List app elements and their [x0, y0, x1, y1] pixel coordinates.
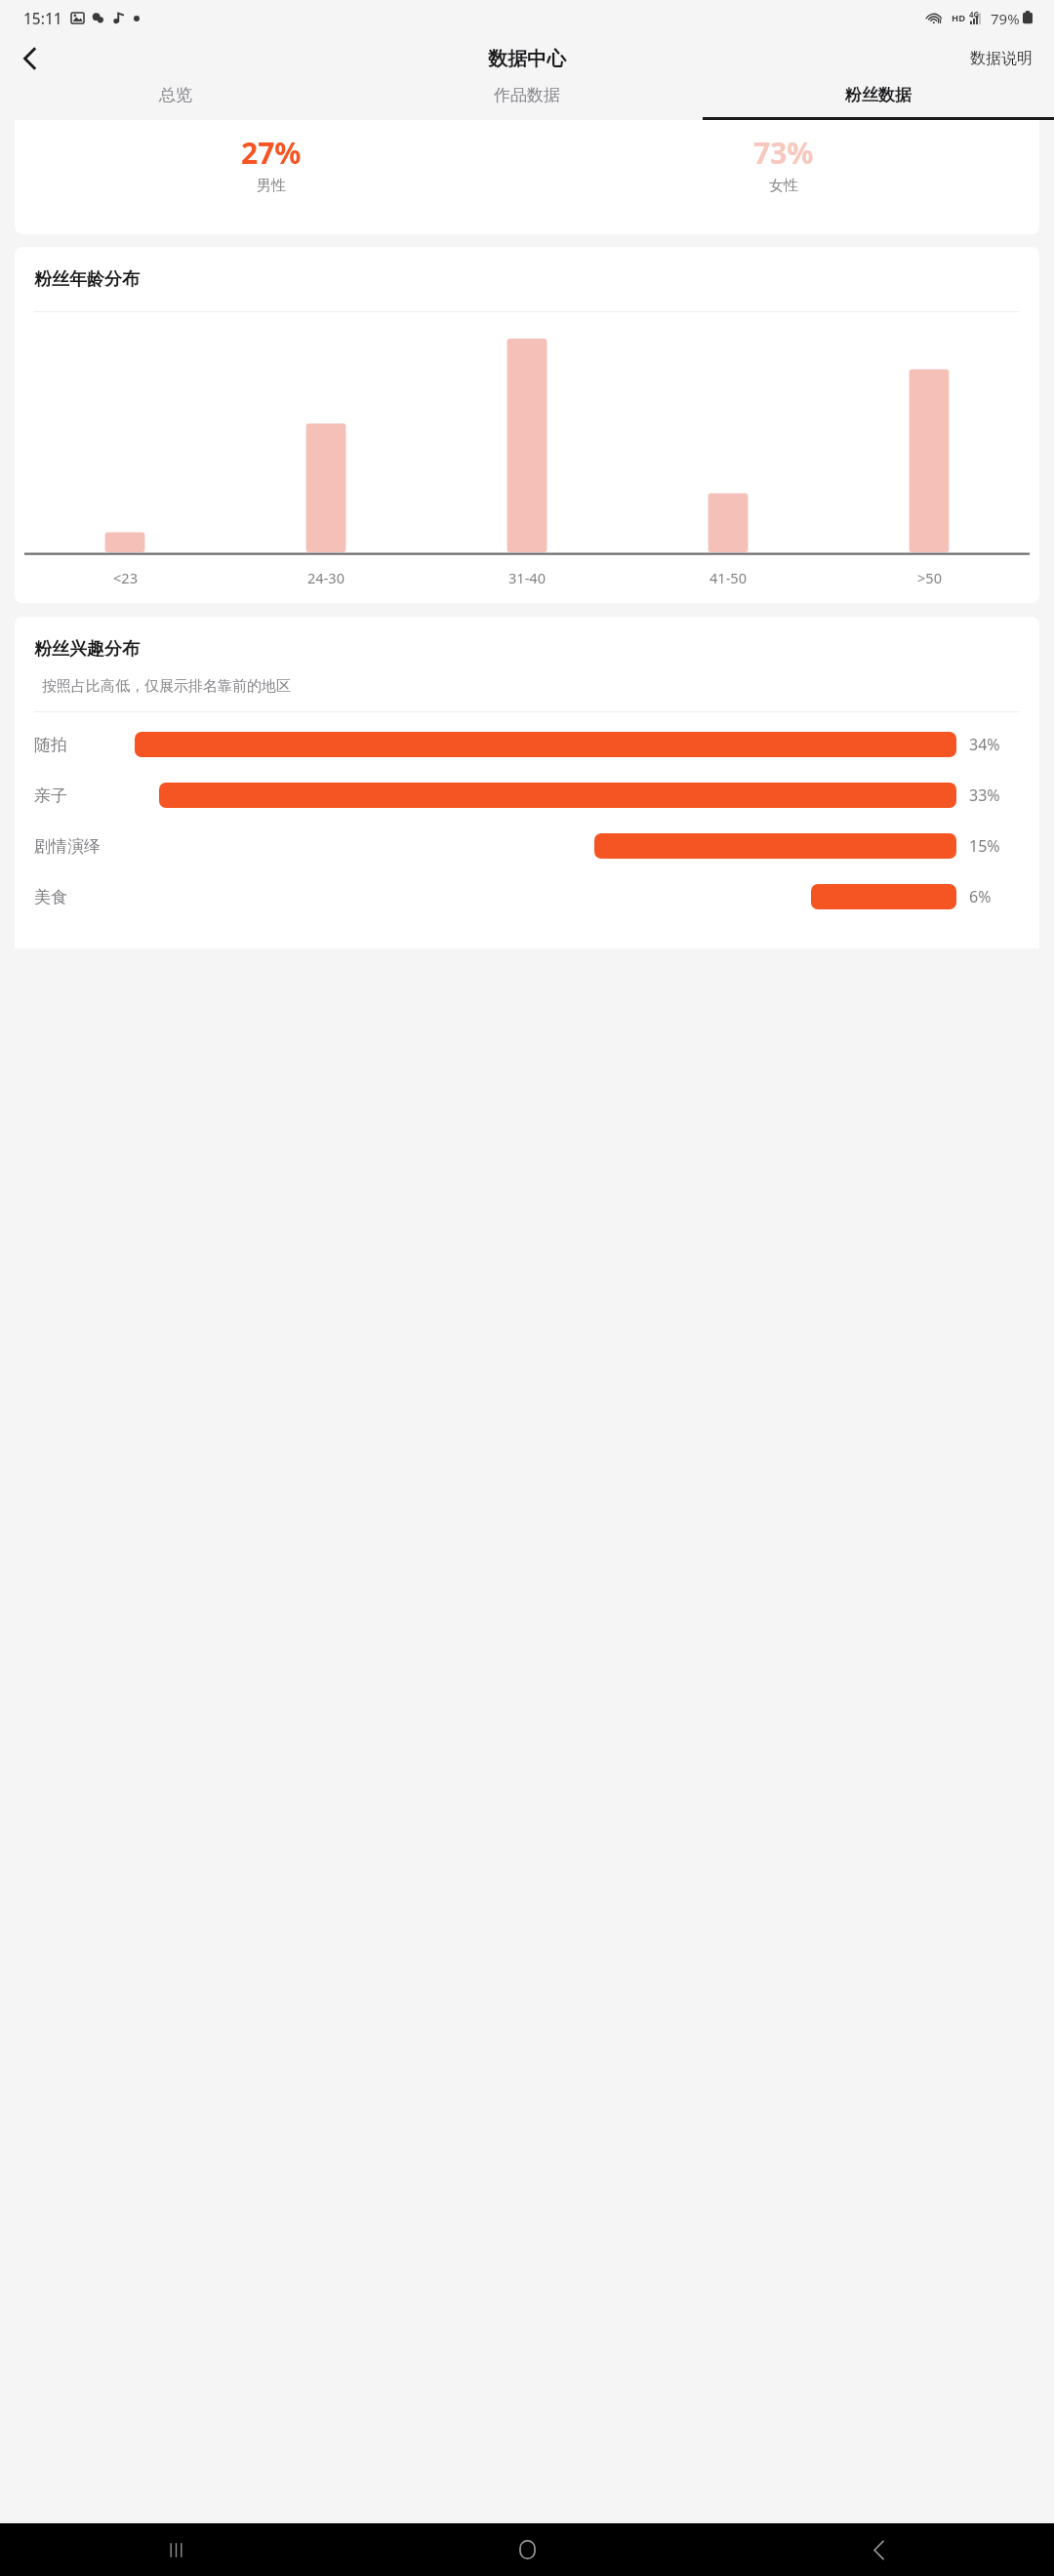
staticText: HD [952, 12, 966, 24]
staticText: 34% [969, 734, 1000, 755]
button[interactable]: 作品数据 [351, 81, 703, 120]
staticText: >50 [917, 568, 942, 587]
staticText: 粉丝兴趣分布 [34, 638, 140, 661]
staticText: 79% [991, 9, 1020, 28]
staticText: 15% [969, 835, 1000, 857]
button[interactable]: 美食 [15, 884, 1039, 909]
staticText: 数据中心 [488, 47, 566, 71]
staticText: 作品数据 [494, 85, 560, 105]
staticText: 24-30 [307, 568, 345, 587]
staticText: 男性 [257, 177, 286, 195]
staticText: 女性 [769, 177, 798, 195]
button[interactable]: Recents [0, 2523, 351, 2576]
staticText: 6% [969, 886, 992, 907]
button[interactable]: 剧情演绎 [15, 833, 1039, 859]
staticText: <23 [113, 568, 138, 587]
staticText: 15:11 [23, 8, 62, 28]
button[interactable]: 数据说明 [960, 41, 1042, 76]
staticText: 剧情演绎 [34, 836, 101, 857]
staticText: 4G [969, 9, 980, 20]
button[interactable]: 粉丝数据 [703, 81, 1054, 120]
button[interactable]: 总览 [0, 81, 351, 120]
button[interactable]: 随拍 [15, 732, 1039, 757]
staticText: 数据说明 [970, 49, 1033, 68]
staticText: 33% [969, 785, 1000, 806]
staticText: 美食 [34, 887, 67, 907]
button[interactable]: Back [703, 2523, 1054, 2576]
button[interactable]: Back [6, 36, 53, 81]
staticText: 总览 [159, 85, 192, 105]
staticText: 按照占比高低，仅展示排名靠前的地区 [42, 677, 291, 696]
staticText: 随拍 [34, 735, 67, 755]
button[interactable]: 亲子 [15, 783, 1039, 808]
staticText: 粉丝年龄分布 [34, 268, 140, 291]
staticText: 73% [753, 133, 814, 173]
button[interactable]: Home [351, 2523, 703, 2576]
staticText: 亲子 [34, 785, 67, 806]
staticText: 31-40 [508, 568, 546, 587]
staticText: 27% [241, 133, 302, 173]
staticText: 粉丝数据 [845, 85, 912, 105]
staticText: 41-50 [709, 568, 747, 587]
